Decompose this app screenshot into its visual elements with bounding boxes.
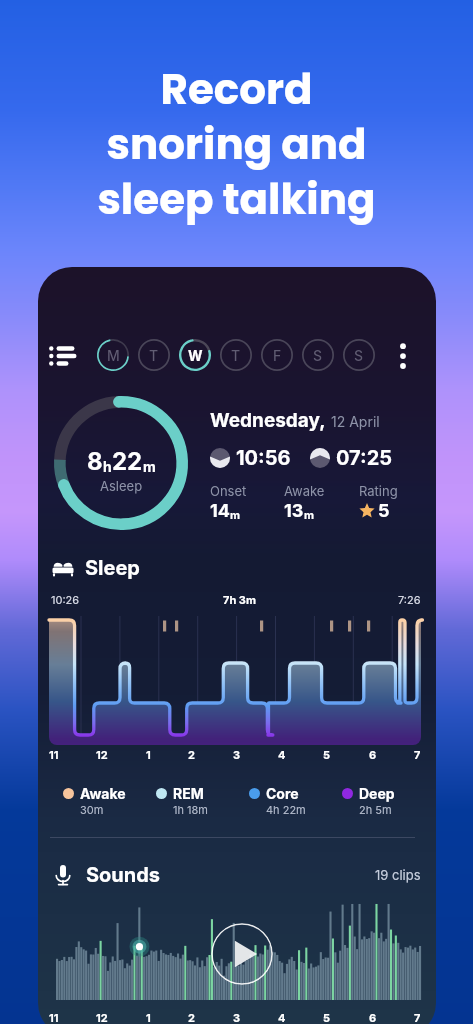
button[interactable]: List view: [41, 335, 83, 377]
staticText: Deep: [359, 785, 395, 802]
staticText: 1: [146, 1011, 151, 1024]
button[interactable]: Play: [211, 923, 273, 985]
staticText: 5: [323, 748, 331, 761]
staticText: 5: [323, 1011, 331, 1024]
staticText: 5: [378, 500, 390, 522]
staticText: Awake: [284, 483, 325, 499]
staticText: 7: [414, 748, 421, 761]
staticText: 3: [233, 748, 241, 761]
staticText: S: [313, 347, 323, 364]
staticText: 2: [188, 748, 195, 761]
staticText: 11: [49, 748, 59, 761]
staticText: REM: [173, 785, 204, 802]
staticText: 14: [210, 500, 230, 522]
staticText: 7h 3m: [223, 593, 256, 606]
staticText: 10:26: [51, 593, 80, 606]
staticText: 12: [96, 748, 108, 761]
staticText: h: [103, 458, 112, 475]
staticText: 3: [233, 1011, 241, 1024]
staticText: 4: [278, 748, 286, 761]
button[interactable]: T: [137, 338, 171, 372]
staticText: Awake: [80, 785, 126, 802]
staticText: 30m: [80, 803, 104, 816]
staticText: M: [107, 347, 120, 364]
staticText: 19 clips: [375, 867, 421, 883]
staticText: m: [143, 458, 156, 475]
staticText: m: [304, 508, 315, 521]
button[interactable]: M: [96, 338, 130, 372]
staticText: 1h 18m: [173, 803, 208, 816]
staticText: W: [188, 347, 203, 364]
button[interactable]: More options: [382, 335, 424, 377]
staticText: Sounds: [86, 863, 161, 887]
staticText: 12: [96, 1011, 108, 1024]
staticText: T: [149, 347, 159, 364]
staticText: Onset: [210, 483, 247, 499]
button[interactable]: T: [219, 338, 253, 372]
staticText: 12 April: [331, 413, 380, 430]
staticText: Rating: [359, 483, 398, 499]
staticText: 6: [369, 1011, 377, 1024]
staticText: 6: [369, 748, 377, 761]
button[interactable]: W: [178, 338, 212, 372]
staticText: 10:56: [236, 446, 291, 470]
staticText: 1: [146, 748, 151, 761]
staticText: Wednesday,: [210, 409, 326, 432]
staticText: F: [273, 347, 282, 364]
staticText: Core: [266, 785, 299, 802]
staticText: Asleep: [100, 478, 143, 494]
staticText: 11: [49, 1011, 59, 1024]
staticText: 7: [414, 1011, 421, 1024]
staticText: 13: [284, 500, 304, 522]
staticText: 22: [112, 447, 143, 476]
staticText: Sleep: [85, 556, 140, 580]
button[interactable]: S: [342, 338, 376, 372]
button[interactable]: S: [301, 338, 335, 372]
staticText: 4: [278, 1011, 286, 1024]
staticText: m: [230, 508, 241, 521]
staticText: S: [354, 347, 364, 364]
button[interactable]: F: [260, 338, 294, 372]
staticText: 7:26: [398, 593, 421, 606]
staticText: 4h 22m: [266, 803, 306, 816]
staticText: 07:25: [336, 446, 393, 470]
staticText: 2: [188, 1011, 195, 1024]
staticText: T: [231, 347, 241, 364]
staticText: 8: [87, 447, 103, 476]
staticText: 2h 5m: [359, 803, 392, 816]
staticText: Record snoring and sleep talking: [97, 60, 376, 229]
